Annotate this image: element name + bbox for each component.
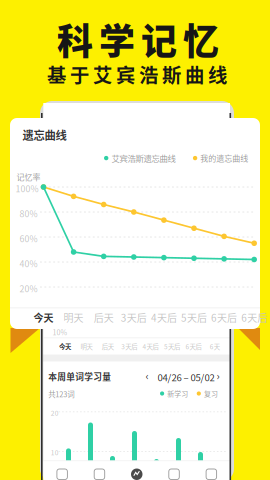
staticText: 基于艾宾浩斯曲线 bbox=[47, 60, 227, 88]
staticText: › bbox=[216, 368, 219, 383]
staticText: 艾宾浩斯遗忘曲线 bbox=[111, 152, 175, 164]
staticText: 04/26 – 05/02 bbox=[157, 370, 214, 384]
button[interactable]: 6天后 bbox=[210, 307, 238, 328]
button[interactable]: 明天 bbox=[60, 307, 88, 328]
staticText: 今天 bbox=[33, 310, 53, 325]
button[interactable]: 4天后 bbox=[150, 307, 178, 328]
staticText: 本周单词学习量 bbox=[48, 370, 111, 383]
staticText: 10 bbox=[51, 447, 59, 457]
staticText: 80% bbox=[19, 207, 37, 220]
staticText: 遗忘曲线 bbox=[22, 126, 66, 143]
button[interactable]: Study bbox=[118, 464, 155, 480]
button[interactable]: Notebook bbox=[81, 464, 118, 480]
staticText: 明天 bbox=[64, 310, 84, 325]
staticText: 60% bbox=[19, 232, 37, 245]
staticText: 科学记忆 bbox=[57, 13, 219, 65]
staticText: 6天后 bbox=[241, 310, 267, 325]
button[interactable]: 今天 bbox=[29, 307, 57, 328]
staticText: 6天后 bbox=[211, 310, 237, 325]
staticText: 共123词 bbox=[48, 388, 74, 399]
staticText: 5天后 bbox=[164, 342, 180, 351]
button[interactable]: 6天后 bbox=[240, 307, 268, 328]
staticText: 6天后 bbox=[185, 342, 201, 351]
button[interactable]: 后天 bbox=[90, 307, 118, 328]
staticText: 后天 bbox=[94, 310, 114, 325]
button[interactable]: Profile bbox=[193, 464, 230, 480]
button[interactable]: Previous week bbox=[142, 369, 151, 381]
staticText: 今天 bbox=[59, 342, 71, 351]
staticText: 40% bbox=[19, 257, 37, 270]
staticText: 我的遗忘曲线 bbox=[200, 152, 248, 164]
staticText: 20 bbox=[51, 408, 59, 418]
staticText: 记忆率 bbox=[16, 171, 40, 183]
staticText: 20% bbox=[19, 282, 37, 295]
staticText: 10% bbox=[52, 327, 67, 337]
staticText: 明天 bbox=[80, 342, 92, 351]
button[interactable]: Home bbox=[43, 464, 81, 480]
staticText: 复习 bbox=[204, 388, 218, 398]
staticText: 4天后 bbox=[151, 310, 177, 325]
button[interactable]: Stats bbox=[155, 464, 193, 480]
staticText: 4天后 bbox=[143, 342, 159, 351]
button[interactable]: 3天后 bbox=[120, 307, 148, 328]
staticText: 6天 bbox=[210, 342, 220, 351]
staticText: 后天 bbox=[102, 342, 114, 351]
staticText: 5天后 bbox=[181, 310, 207, 325]
button[interactable]: 5天后 bbox=[180, 307, 208, 328]
staticText: 3天后 bbox=[121, 310, 147, 325]
button[interactable]: Next week bbox=[213, 369, 222, 381]
staticText: ‹ bbox=[145, 368, 148, 383]
staticText: 新学习 bbox=[167, 388, 188, 398]
staticText: 3天后 bbox=[121, 342, 137, 351]
staticText: 100% bbox=[15, 182, 38, 195]
